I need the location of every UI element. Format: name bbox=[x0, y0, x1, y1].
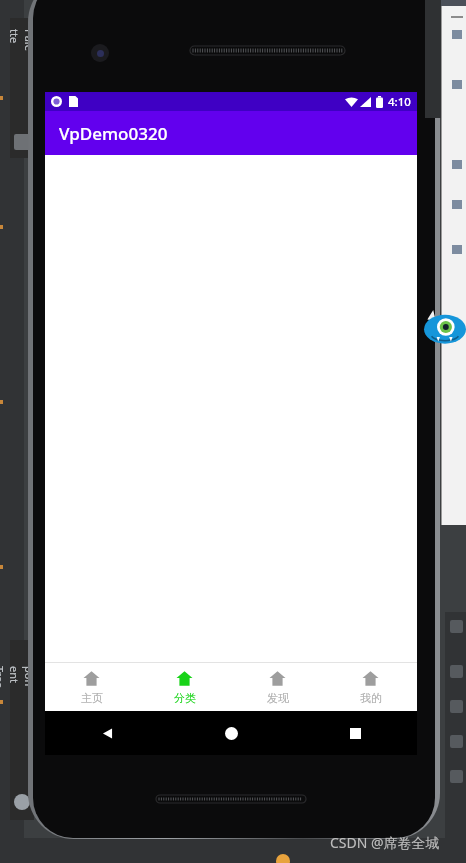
button[interactable]: 主页 bbox=[45, 663, 138, 711]
button[interactable] bbox=[450, 620, 463, 633]
staticText: CSDN @席卷全城 bbox=[330, 833, 440, 852]
staticText: Palette bbox=[7, 29, 37, 53]
staticText: Component Tree bbox=[0, 666, 52, 690]
staticText: VpDemo0320 bbox=[59, 122, 168, 145]
button[interactable]: 发现 bbox=[231, 663, 324, 711]
staticText: 发现 bbox=[267, 691, 289, 705]
button[interactable]: Component Tree bbox=[10, 640, 34, 820]
staticText: 分类 bbox=[174, 691, 196, 705]
staticText: 我的 bbox=[360, 691, 382, 705]
staticText: 4:10 bbox=[388, 94, 411, 110]
button[interactable] bbox=[450, 770, 463, 783]
button[interactable]: 我的 bbox=[324, 663, 417, 711]
button[interactable]: Home bbox=[169, 711, 293, 755]
button[interactable]: Back bbox=[45, 711, 169, 755]
button[interactable]: Palette bbox=[10, 18, 34, 158]
staticText: 主页 bbox=[81, 691, 103, 705]
button[interactable]: Recents bbox=[293, 711, 417, 755]
button[interactable] bbox=[450, 665, 463, 678]
button[interactable]: 分类 bbox=[138, 663, 231, 711]
button[interactable] bbox=[450, 735, 463, 748]
button[interactable] bbox=[450, 700, 463, 713]
